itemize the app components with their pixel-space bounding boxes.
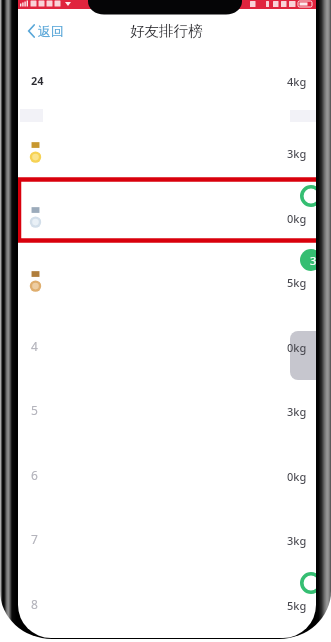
button[interactable]: Streak badge bbox=[18, 249, 316, 313]
staticText: 5 bbox=[31, 402, 38, 418]
button[interactable]: 4 bbox=[18, 314, 316, 378]
staticText: 7 bbox=[31, 531, 38, 547]
other: Streak badge bbox=[300, 185, 316, 207]
staticText: 4kg bbox=[287, 74, 307, 89]
staticText: 8 bbox=[31, 596, 38, 612]
button[interactable]: Streak badge bbox=[18, 185, 316, 249]
staticText: 3kg bbox=[287, 146, 307, 161]
staticText: 0kg bbox=[287, 340, 307, 355]
staticText: 返回 bbox=[38, 23, 64, 39]
staticText: 24 bbox=[31, 73, 44, 88]
staticText: 4 bbox=[31, 338, 38, 354]
staticText: 6 bbox=[31, 467, 38, 483]
button[interactable]: 5 bbox=[18, 378, 316, 442]
staticText: 3 bbox=[310, 253, 316, 268]
staticText: 3kg bbox=[287, 404, 307, 419]
button[interactable]: 8 bbox=[18, 572, 316, 636]
staticText: 5kg bbox=[287, 275, 307, 290]
button[interactable]: Back bbox=[24, 17, 65, 45]
button[interactable]: 6 bbox=[18, 443, 316, 507]
button[interactable]: 7 bbox=[18, 507, 316, 571]
other: Streak badge bbox=[300, 249, 316, 271]
staticText: 3kg bbox=[287, 533, 307, 548]
button[interactable]: 24 bbox=[18, 48, 316, 112]
staticText: 好友排行榜 bbox=[130, 22, 203, 40]
other: Streak badge bbox=[300, 572, 316, 594]
staticText: 0kg bbox=[287, 469, 307, 484]
button[interactable]: 3kg bbox=[18, 120, 316, 184]
staticText: 5kg bbox=[287, 598, 307, 613]
staticText: 0kg bbox=[287, 211, 307, 226]
